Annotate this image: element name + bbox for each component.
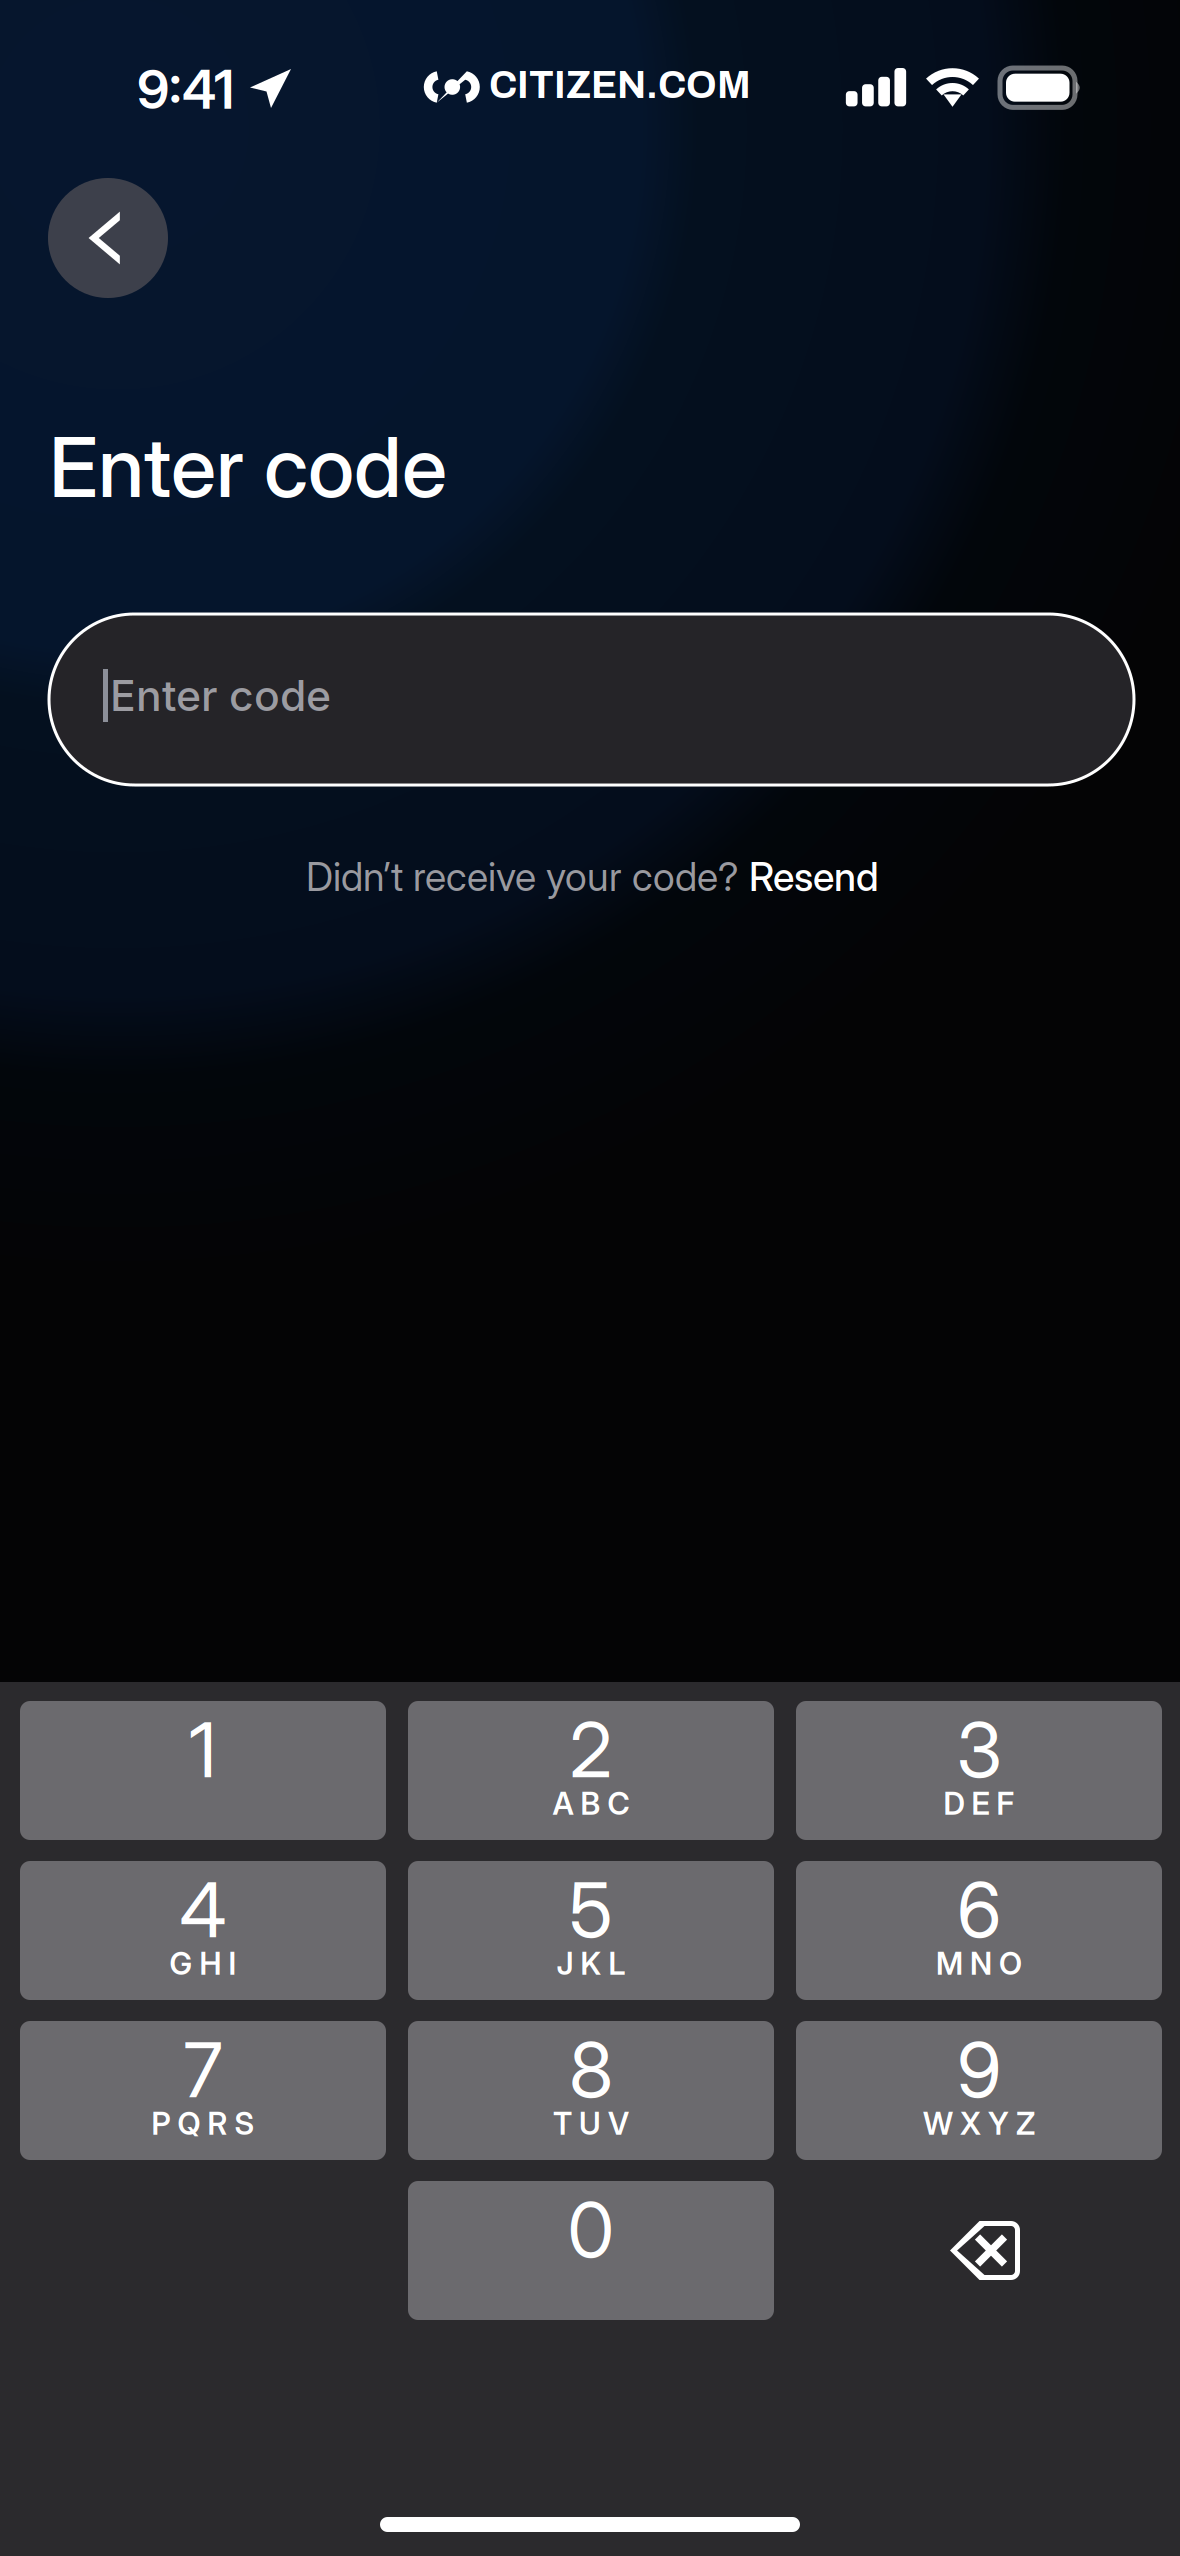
button[interactable]: 7 (20, 2021, 386, 2160)
staticText: 5 (569, 1863, 613, 1955)
button[interactable]: 4 (20, 1861, 386, 2000)
staticText: M N O (936, 1945, 1022, 1982)
staticText: CITIZEN.COM (489, 64, 751, 106)
button[interactable]: 8 (408, 2021, 774, 2160)
staticText: Enter code (110, 670, 331, 721)
staticText: Resend (749, 853, 879, 901)
staticText: T U V (553, 2105, 629, 2142)
staticText: 0 (567, 2183, 614, 2275)
button[interactable]: Delete (796, 2181, 1162, 2320)
staticText: Enter code (49, 417, 447, 517)
staticText: 9 (957, 2023, 1001, 2115)
staticText: 7 (183, 2023, 222, 2115)
staticText: 2 (569, 1703, 612, 1795)
button[interactable]: 1 (20, 1701, 386, 1840)
button[interactable]: 5 (408, 1861, 774, 2000)
button[interactable]: 0 (408, 2181, 774, 2320)
staticText: Didn’t receive your code? (306, 853, 749, 901)
button[interactable]: Back (48, 178, 168, 298)
staticText: A B C (552, 1785, 629, 1822)
staticText: 4 (179, 1863, 226, 1955)
button[interactable]: 3 (796, 1701, 1162, 1840)
button[interactable]: Didn’t receive your code? (306, 853, 879, 901)
button[interactable]: 9 (796, 2021, 1162, 2160)
staticText: D E F (943, 1785, 1014, 1822)
staticText: J K L (556, 1945, 625, 1982)
staticText: 3 (956, 1703, 1001, 1795)
staticText: 8 (569, 2023, 613, 2115)
button[interactable]: 2 (408, 1701, 774, 1840)
staticText: 1 (189, 1703, 217, 1795)
staticText: 9:41 (137, 57, 234, 121)
staticText: G H I (169, 1945, 236, 1982)
button[interactable]: 6 (796, 1861, 1162, 2000)
staticText: P Q R S (151, 2105, 254, 2142)
staticText: 6 (957, 1863, 1001, 1955)
staticText: W X Y Z (923, 2105, 1035, 2142)
